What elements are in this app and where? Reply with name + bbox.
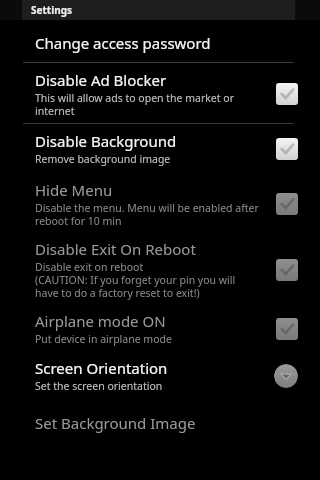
staticText: Disable Background (35, 131, 177, 151)
staticText: Settings (31, 3, 72, 17)
button[interactable]: Toggle checkbox (276, 83, 298, 105)
button[interactable]: Toggle checkbox (276, 193, 298, 215)
staticText: This will allow ads to open the market o… (35, 91, 234, 118)
staticText: Remove background image (35, 152, 171, 166)
staticText: Set Background Image (35, 413, 196, 433)
staticText: Put device in airplane mode (35, 332, 172, 346)
button[interactable]: Change access password (0, 24, 320, 62)
staticText: Screen Orientation (35, 358, 168, 378)
button[interactable]: Airplane mode ON (0, 305, 320, 352)
staticText: Disable the menu. Menu will be enabled a… (35, 201, 259, 228)
button[interactable]: Toggle checkbox (276, 259, 298, 281)
staticText: Airplane mode ON (35, 311, 166, 331)
button[interactable]: Screen orientation dropdown (274, 364, 298, 388)
staticText: Hide Menu (35, 180, 113, 200)
button[interactable]: Hide Menu (0, 173, 320, 233)
button[interactable]: Toggle checkbox (276, 138, 298, 160)
button[interactable]: Disable Exit On Reboot (0, 233, 320, 305)
button[interactable]: Disable Ad Blocker (0, 63, 320, 123)
button[interactable]: Set Background Image (0, 399, 320, 443)
staticText: Disable Exit On Reboot (35, 239, 196, 259)
staticText: Set the screen orientation (35, 379, 163, 393)
staticText: Change access password (35, 33, 211, 53)
button[interactable]: Toggle checkbox (276, 318, 298, 340)
button[interactable]: Screen Orientation (0, 352, 320, 399)
staticText: Disable exit on reboot (CAUTION: If you … (35, 260, 236, 300)
staticText: Disable Ad Blocker (35, 70, 167, 90)
button[interactable]: Disable Background (0, 124, 320, 173)
